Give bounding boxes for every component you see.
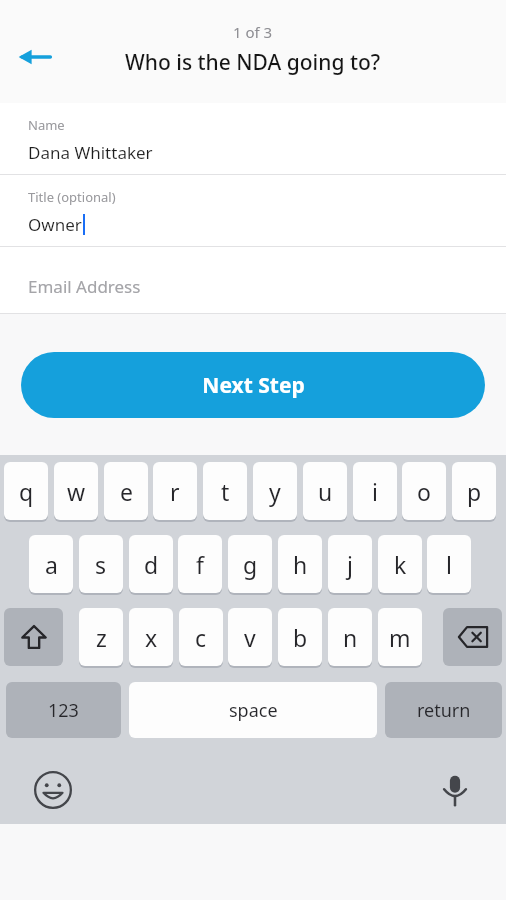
staticText: s bbox=[95, 549, 107, 580]
button[interactable]: u bbox=[303, 462, 347, 520]
staticText: x bbox=[145, 622, 158, 653]
button[interactable]: y bbox=[253, 462, 297, 520]
button[interactable]: Email Address bbox=[0, 247, 506, 313]
staticText: j bbox=[347, 549, 353, 580]
button[interactable]: m bbox=[378, 608, 422, 666]
button[interactable]: d bbox=[129, 535, 173, 593]
button[interactable]: a bbox=[29, 535, 73, 593]
button[interactable]: z bbox=[79, 608, 123, 666]
staticText: q bbox=[19, 476, 34, 507]
button[interactable]: b bbox=[278, 608, 322, 666]
staticText: Title (optional) bbox=[28, 188, 116, 206]
staticText: Dana Whittaker bbox=[28, 141, 153, 164]
button[interactable]: Name bbox=[0, 103, 506, 174]
button[interactable]: c bbox=[179, 608, 223, 666]
button[interactable]: q bbox=[4, 462, 48, 520]
button[interactable]: l bbox=[427, 535, 471, 593]
button[interactable]: k bbox=[378, 535, 422, 593]
staticText: a bbox=[45, 549, 58, 580]
button[interactable]: Next Step bbox=[21, 352, 485, 418]
button[interactable]: o bbox=[402, 462, 446, 520]
button[interactable]: return bbox=[385, 682, 502, 738]
staticText: return bbox=[417, 698, 471, 723]
staticText: f bbox=[196, 549, 204, 580]
button[interactable]: s bbox=[79, 535, 123, 593]
button[interactable]: Backspace bbox=[443, 608, 502, 666]
button[interactable]: e bbox=[104, 462, 148, 520]
staticText: o bbox=[417, 476, 431, 507]
staticText: h bbox=[293, 549, 308, 580]
button[interactable]: Back bbox=[10, 32, 60, 82]
staticText: n bbox=[343, 622, 358, 653]
button[interactable]: i bbox=[353, 462, 397, 520]
button[interactable]: space bbox=[129, 682, 377, 738]
staticText: g bbox=[243, 549, 258, 580]
button[interactable]: j bbox=[328, 535, 372, 593]
button[interactable]: Dictate bbox=[431, 766, 479, 814]
button[interactable]: f bbox=[178, 535, 222, 593]
staticText: e bbox=[120, 476, 133, 507]
button[interactable]: t bbox=[203, 462, 247, 520]
staticText: v bbox=[244, 622, 256, 653]
button[interactable]: r bbox=[153, 462, 197, 520]
button[interactable]: w bbox=[54, 462, 98, 520]
button[interactable]: v bbox=[228, 608, 272, 666]
staticText: i bbox=[372, 476, 378, 507]
staticText: k bbox=[394, 549, 407, 580]
button[interactable]: h bbox=[278, 535, 322, 593]
button[interactable]: Emoji bbox=[29, 766, 77, 814]
staticText: u bbox=[318, 476, 333, 507]
button[interactable]: p bbox=[452, 462, 496, 520]
staticText: c bbox=[195, 622, 207, 653]
staticText: Who is the NDA going to? bbox=[125, 48, 381, 77]
staticText: z bbox=[96, 622, 107, 653]
staticText: w bbox=[67, 476, 86, 507]
button[interactable]: Title (optional) bbox=[0, 175, 506, 246]
button[interactable]: Shift bbox=[4, 608, 63, 666]
staticText: 123 bbox=[48, 698, 79, 723]
staticText: m bbox=[389, 622, 411, 653]
button[interactable]: 123 bbox=[6, 682, 121, 738]
staticText: Next Step bbox=[202, 371, 305, 400]
staticText: y bbox=[269, 476, 281, 507]
staticText: r bbox=[170, 476, 180, 507]
staticText: p bbox=[467, 476, 482, 507]
staticText: Email Address bbox=[28, 275, 141, 298]
staticText: Owner bbox=[28, 213, 82, 236]
staticText: l bbox=[446, 549, 452, 580]
button[interactable]: x bbox=[129, 608, 173, 666]
staticText: d bbox=[144, 549, 159, 580]
staticText: space bbox=[229, 698, 278, 723]
staticText: 1 of 3 bbox=[233, 22, 273, 42]
staticText: b bbox=[293, 622, 308, 653]
staticText: Name bbox=[28, 116, 65, 134]
button[interactable]: n bbox=[328, 608, 372, 666]
button[interactable]: g bbox=[228, 535, 272, 593]
staticText: t bbox=[221, 476, 230, 507]
